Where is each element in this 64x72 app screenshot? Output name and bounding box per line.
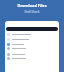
- button[interactable]: [5, 52, 59, 57]
- button[interactable]: [5, 37, 59, 42]
- button[interactable]: [5, 42, 59, 47]
- staticText: Shell Shock: [0, 10, 64, 14]
- staticText: Download Files: [0, 3, 64, 8]
- button[interactable]: [6, 27, 58, 31]
- button[interactable]: [5, 56, 59, 61]
- button[interactable]: [5, 46, 59, 51]
- button[interactable]: [5, 32, 59, 37]
